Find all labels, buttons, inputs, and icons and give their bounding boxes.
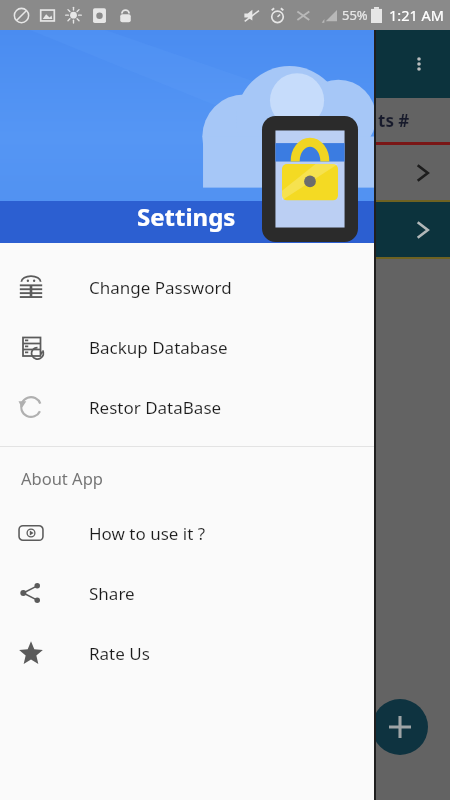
button[interactable]: More options bbox=[400, 45, 438, 83]
staticText: Change Password bbox=[89, 276, 232, 299]
button[interactable]: Change Password bbox=[0, 257, 376, 317]
button[interactable] bbox=[0, 145, 450, 200]
button[interactable]: Add bbox=[372, 699, 428, 755]
button[interactable]: Backup Database bbox=[0, 317, 376, 377]
button[interactable] bbox=[0, 202, 450, 257]
staticText: How to use it ? bbox=[89, 522, 206, 545]
staticText: Backup Database bbox=[89, 336, 228, 359]
button[interactable]: Share bbox=[0, 563, 376, 623]
staticText: Share bbox=[89, 582, 135, 605]
button[interactable]: How to use it ? bbox=[0, 503, 376, 563]
button[interactable]: Rate Us bbox=[0, 623, 376, 683]
staticText: ts # bbox=[378, 109, 410, 132]
button[interactable]: Restor DataBase bbox=[0, 377, 376, 437]
staticText: 55% bbox=[342, 6, 368, 24]
staticText: 1:21 AM bbox=[389, 5, 444, 25]
staticText: About App bbox=[21, 467, 103, 489]
staticText: Rate Us bbox=[89, 642, 150, 665]
staticText: Settings bbox=[137, 200, 236, 233]
staticText: Restor DataBase bbox=[89, 396, 222, 419]
